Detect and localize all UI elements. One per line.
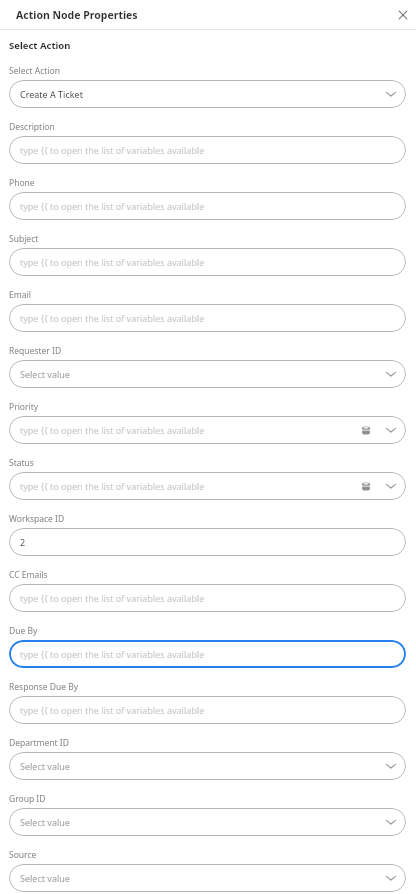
staticText: Action Node Properties <box>16 8 138 22</box>
button[interactable]: 2 <box>9 528 406 556</box>
staticText: CC Emails <box>9 569 48 581</box>
staticText: type {{ to open the list of variables av… <box>20 424 361 436</box>
staticText: Workspace ID <box>9 513 65 525</box>
button[interactable]: type {{ to open the list of variables av… <box>9 696 406 724</box>
button[interactable]: type {{ to open the list of variables av… <box>9 584 406 612</box>
staticText: Select Action <box>9 39 71 52</box>
staticText: Group ID <box>9 793 46 805</box>
staticText: type {{ to open the list of variables av… <box>20 200 397 212</box>
button[interactable]: type {{ to open the list of variables av… <box>9 640 406 668</box>
staticText: type {{ to open the list of variables av… <box>20 648 397 660</box>
staticText: Select value <box>20 368 385 380</box>
staticText: Requester ID <box>9 345 62 357</box>
staticText: type {{ to open the list of variables av… <box>20 592 397 604</box>
staticText: Select value <box>20 816 385 828</box>
button[interactable]: type {{ to open the list of variables av… <box>9 136 406 164</box>
button[interactable]: type {{ to open the list of variables av… <box>9 192 406 220</box>
button[interactable]: Select value <box>9 360 406 388</box>
button[interactable]: Select value <box>9 864 406 892</box>
staticText: Response Due By <box>9 681 79 693</box>
staticText: Select value <box>20 760 385 772</box>
staticText: type {{ to open the list of variables av… <box>20 312 397 324</box>
staticText: Phone <box>9 177 35 189</box>
staticText: Email <box>9 289 31 301</box>
button[interactable]: type {{ to open the list of variables av… <box>9 472 406 500</box>
staticText: type {{ to open the list of variables av… <box>20 144 397 156</box>
button[interactable]: type {{ to open the list of variables av… <box>9 416 406 444</box>
staticText: Create A Ticket <box>20 88 385 100</box>
button[interactable]: Select value <box>9 808 406 836</box>
staticText: 2 <box>20 536 397 548</box>
staticText: Source <box>9 849 37 861</box>
staticText: Select value <box>20 872 385 884</box>
button[interactable]: type {{ to open the list of variables av… <box>9 248 406 276</box>
staticText: Select Action <box>9 65 60 77</box>
button[interactable]: Close <box>392 4 414 26</box>
staticText: Status <box>9 457 34 469</box>
button[interactable]: Select value <box>9 752 406 780</box>
button[interactable]: type {{ to open the list of variables av… <box>9 304 406 332</box>
button[interactable]: Create A Ticket <box>9 80 406 108</box>
staticText: Department ID <box>9 737 69 749</box>
staticText: type {{ to open the list of variables av… <box>20 704 397 716</box>
staticText: type {{ to open the list of variables av… <box>20 256 397 268</box>
staticText: Due By <box>9 625 38 637</box>
staticText: Priority <box>9 401 39 413</box>
staticText: type {{ to open the list of variables av… <box>20 480 361 492</box>
staticText: Subject <box>9 233 39 245</box>
staticText: Description <box>9 121 55 133</box>
